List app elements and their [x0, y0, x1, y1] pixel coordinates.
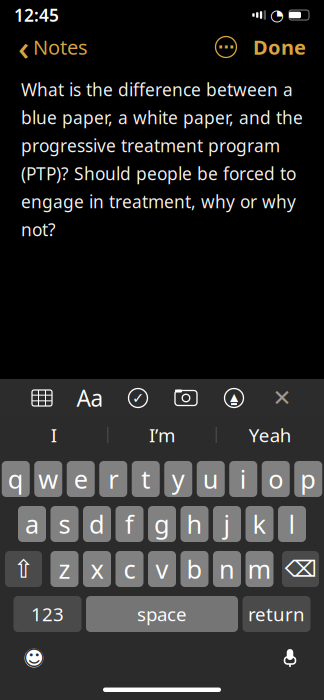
- staticText: m: [247, 552, 271, 586]
- staticText: w: [38, 462, 58, 496]
- staticText: b: [186, 552, 202, 586]
- staticText: 123: [31, 602, 64, 626]
- staticText: g: [154, 507, 170, 541]
- button[interactable]: y: [164, 461, 192, 497]
- button[interactable]: x: [83, 551, 111, 587]
- staticText: y: [172, 462, 185, 496]
- staticText: a: [25, 507, 39, 541]
- staticText: o: [268, 462, 283, 496]
- button[interactable]: n: [213, 551, 241, 587]
- button[interactable]: b: [180, 551, 208, 587]
- staticText: ⋯: [218, 38, 234, 56]
- staticText: f: [125, 507, 134, 541]
- button[interactable]: Delete: [282, 551, 319, 587]
- button[interactable]: z: [50, 551, 78, 587]
- button[interactable]: Shift: [5, 551, 42, 587]
- staticText: return: [248, 602, 305, 626]
- button[interactable]: Camera: [162, 380, 210, 416]
- button[interactable]: e: [67, 461, 95, 497]
- button[interactable]: j: [213, 506, 241, 542]
- button[interactable]: s: [50, 506, 78, 542]
- button[interactable]: Done: [243, 29, 316, 65]
- staticText: ☺: [23, 646, 45, 670]
- button[interactable]: ‹: [8, 29, 98, 65]
- button[interactable]: More: [209, 29, 243, 65]
- button[interactable]: Emoji: [14, 641, 54, 675]
- button[interactable]: p: [294, 461, 322, 497]
- button[interactable]: I’m: [108, 418, 216, 452]
- button[interactable]: Table: [18, 380, 66, 416]
- button[interactable]: a: [18, 506, 46, 542]
- staticText: l: [288, 507, 295, 541]
- staticText: z: [58, 552, 70, 586]
- staticText: ⇧: [13, 555, 34, 583]
- button[interactable]: w: [34, 461, 62, 497]
- staticText: c: [123, 552, 135, 586]
- button[interactable]: Format: [66, 380, 114, 416]
- button[interactable]: l: [278, 506, 306, 542]
- staticText: ⌫: [284, 556, 316, 582]
- staticText: i: [240, 462, 247, 496]
- staticText: Yeah: [249, 423, 292, 447]
- button[interactable]: v: [148, 551, 176, 587]
- staticText: ◔: [270, 6, 284, 24]
- staticText: ✓: [132, 390, 144, 406]
- button[interactable]: m: [245, 551, 273, 587]
- staticText: n: [219, 552, 235, 586]
- button[interactable]: 123: [13, 596, 81, 632]
- button[interactable]: Yeah: [217, 418, 324, 452]
- staticText: I’m: [149, 423, 175, 447]
- staticText: h: [186, 507, 202, 541]
- staticText: Notes: [33, 34, 88, 60]
- button[interactable]: f: [115, 506, 143, 542]
- staticText: ✕: [272, 385, 291, 411]
- button[interactable]: q: [2, 461, 30, 497]
- staticText: What is the difference between a blue pa…: [21, 78, 303, 241]
- button[interactable]: c: [115, 551, 143, 587]
- staticText: s: [58, 507, 70, 541]
- staticText: q: [8, 462, 24, 496]
- button[interactable]: Close keyboard: [258, 380, 306, 416]
- button[interactable]: return: [242, 596, 310, 632]
- button[interactable]: I: [0, 418, 107, 452]
- button[interactable]: h: [180, 506, 208, 542]
- button[interactable]: i: [229, 461, 257, 497]
- staticText: Done: [253, 34, 306, 60]
- button[interactable]: k: [245, 506, 273, 542]
- staticText: k: [252, 507, 266, 541]
- button[interactable]: r: [99, 461, 127, 497]
- staticText: I: [51, 423, 57, 447]
- staticText: p: [300, 462, 316, 496]
- button[interactable]: u: [197, 461, 225, 497]
- button[interactable]: Checklist: [114, 380, 162, 416]
- staticText: x: [90, 552, 103, 586]
- button[interactable]: d: [83, 506, 111, 542]
- staticText: j: [223, 507, 230, 541]
- staticText: e: [74, 462, 88, 496]
- button[interactable]: o: [262, 461, 290, 497]
- staticText: ▲: [230, 391, 238, 403]
- staticText: u: [203, 462, 219, 496]
- button[interactable]: Markup: [210, 380, 258, 416]
- button[interactable]: t: [132, 461, 160, 497]
- staticText: ‹: [18, 24, 29, 70]
- button[interactable]: g: [148, 506, 176, 542]
- staticText: r: [108, 462, 118, 496]
- button[interactable]: Dictation: [270, 641, 310, 675]
- button[interactable]: space: [86, 596, 238, 632]
- staticText: space: [137, 602, 187, 626]
- staticText: t: [141, 462, 150, 496]
- staticText: 12:45: [14, 3, 59, 26]
- staticText: v: [155, 552, 168, 586]
- staticText: Aa: [76, 383, 103, 413]
- staticText: d: [89, 507, 105, 541]
